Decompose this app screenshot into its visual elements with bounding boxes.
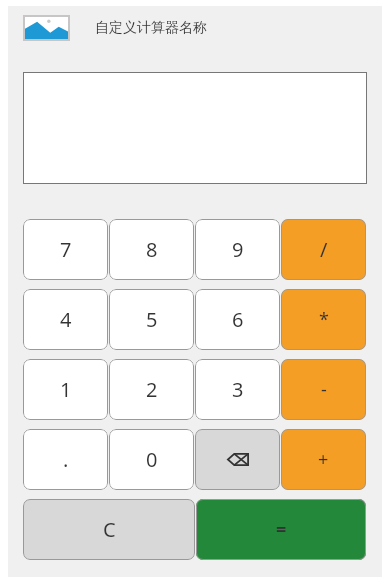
staticText: C [103,516,116,543]
button[interactable] [195,429,280,490]
staticText: 5 [146,306,158,333]
staticText: 自定义计算器名称 [95,19,207,37]
button[interactable]: . [23,429,108,490]
button[interactable]: - [281,359,366,420]
button[interactable]: 8 [109,219,194,280]
staticText: / [320,236,328,263]
button[interactable]: 0 [109,429,194,490]
button[interactable] [23,72,367,184]
staticText: 7 [60,236,72,263]
staticText: 3 [232,376,244,403]
button[interactable]: 2 [109,359,194,420]
staticText: = [276,517,287,542]
button[interactable]: 4 [23,289,108,350]
button[interactable]: 1 [23,359,108,420]
staticText: 4 [60,306,72,333]
staticText: 0 [146,446,158,473]
button[interactable]: 7 [23,219,108,280]
button[interactable]: 3 [195,359,280,420]
staticText: * [319,307,329,332]
staticText: 1 [60,376,72,403]
button[interactable]: = [196,499,366,560]
staticText: . [63,446,69,473]
button[interactable]: + [281,429,366,490]
staticText: 6 [232,306,244,333]
button[interactable]: 9 [195,219,280,280]
button[interactable]: / [281,219,366,280]
staticText: + [318,447,329,472]
staticText: 8 [146,236,158,263]
staticText: 9 [232,236,244,263]
button[interactable] [23,15,70,41]
button[interactable]: * [281,289,366,350]
button[interactable]: C [23,499,195,560]
button[interactable]: 6 [195,289,280,350]
staticText: - [321,377,327,402]
button[interactable]: 5 [109,289,194,350]
staticText: 2 [146,376,158,403]
